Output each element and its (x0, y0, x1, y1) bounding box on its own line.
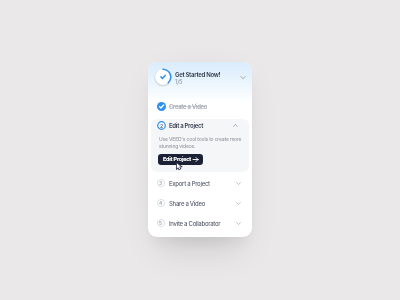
staticText: Invite a Collaborator (169, 220, 221, 227)
staticText: Share a Video (169, 200, 205, 207)
button[interactable]: 3 (148, 174, 252, 192)
staticText: Edit a Project (169, 122, 204, 129)
staticText: 5 (159, 220, 163, 226)
staticText: 3 (159, 180, 163, 186)
staticText: Use VEED's cool tools to create more stu… (159, 136, 245, 149)
button[interactable]: Expand Export a Project (233, 178, 244, 189)
button[interactable]: 4 (148, 194, 252, 212)
button[interactable]: Expand Invite a Collaborator (233, 218, 244, 229)
staticText: 2 (160, 123, 164, 129)
button[interactable]: Create a Video (148, 100, 252, 113)
button[interactable]: 2 (151, 119, 249, 172)
button[interactable]: Collapse checklist (237, 71, 249, 83)
button[interactable]: Expand Share a Video (233, 198, 244, 209)
staticText: Edit Project (163, 156, 191, 163)
staticText: 4 (159, 200, 163, 206)
staticText: 1/5 (175, 78, 183, 85)
button[interactable]: Edit Project (163, 154, 198, 165)
staticText: Create a Video (169, 103, 208, 110)
button[interactable]: Collapse Edit a Project (230, 120, 241, 131)
button[interactable]: 5 (148, 214, 252, 232)
staticText: Export a Project (169, 180, 210, 187)
staticText: Get Started Now! (175, 71, 221, 78)
button[interactable]: Get Started Now! (148, 66, 252, 88)
